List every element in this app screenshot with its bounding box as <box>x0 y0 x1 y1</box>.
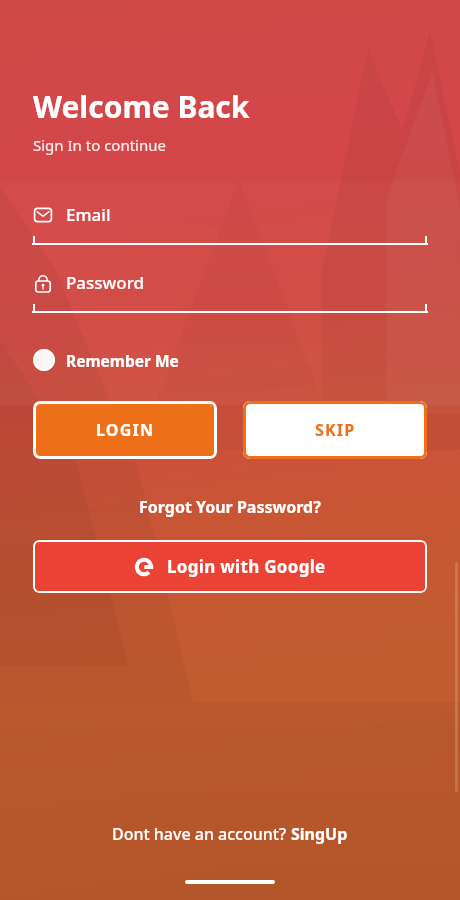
button[interactable]: SKIP <box>243 401 427 459</box>
button[interactable]: SingUp <box>291 823 348 845</box>
staticText: LOGIN <box>96 419 155 441</box>
staticText: Sign In to continue <box>33 135 166 155</box>
staticText: Login with Google <box>167 555 326 578</box>
staticText: Forgot Your Password? <box>139 496 321 518</box>
button[interactable]: Forgot Your Password? <box>131 492 329 522</box>
button[interactable]: Email <box>33 203 427 226</box>
button[interactable]: LOGIN <box>33 401 217 459</box>
button[interactable]: Password <box>33 271 427 294</box>
staticText: Dont have an account? <box>112 823 291 845</box>
staticText: Welcome Back <box>33 86 250 127</box>
staticText: SingUp <box>291 823 348 845</box>
staticText: Email <box>66 203 111 226</box>
staticText: Password <box>66 271 145 294</box>
button[interactable]: Login with Google <box>33 540 427 593</box>
staticText: SKIP <box>315 419 356 441</box>
staticText: Remember Me <box>66 350 179 371</box>
button[interactable]: Remember Me <box>33 346 187 374</box>
